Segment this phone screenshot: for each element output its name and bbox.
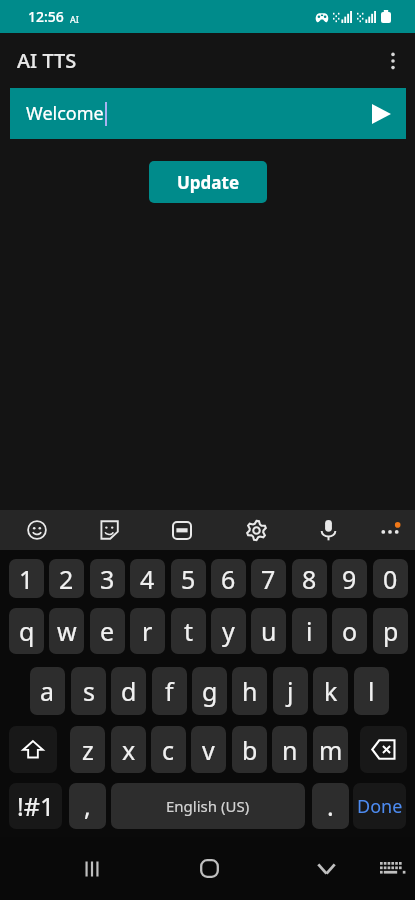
button[interactable]: 4 [130,559,165,598]
button[interactable]: 9 [332,559,367,598]
button[interactable]: Backspace [360,726,407,773]
button[interactable]: 5 [171,559,206,598]
staticText: h [242,674,258,708]
staticText: o [342,614,358,648]
staticText: c [162,733,175,767]
staticText: t [184,614,194,648]
staticText: 0 [383,562,398,596]
staticText: 7 [261,562,276,596]
staticText: u [261,614,277,648]
button[interactable]: Emoji [13,510,61,550]
staticText: 2 [59,562,74,596]
staticText: b [242,733,258,767]
staticText: x [122,733,136,767]
button[interactable]: x [111,726,146,773]
button[interactable]: a [30,667,65,715]
button[interactable]: k [313,667,348,715]
staticText: v [202,733,215,767]
staticText: , [84,789,91,823]
button[interactable]: 0 [373,559,408,598]
staticText: !#1 [17,789,55,823]
staticText: k [324,674,338,708]
button[interactable]: 3 [90,559,125,598]
staticText: 6 [221,562,236,596]
staticText: e [100,614,115,648]
staticText: s [83,674,95,708]
staticText: . [327,789,334,823]
staticText: 3 [100,562,115,596]
staticText: p [383,614,399,648]
staticText: z [82,733,94,767]
button[interactable]: Space [111,783,305,829]
button[interactable]: m [313,726,348,773]
staticText: 12:56 [28,7,64,26]
staticText: g [202,674,218,708]
button[interactable]: Settings [232,510,280,550]
staticText: f [165,674,174,708]
button[interactable]: Recent apps [64,837,120,900]
button[interactable]: v [191,726,226,773]
staticText: 5 [181,562,196,596]
button[interactable]: More options [371,33,415,88]
button[interactable]: s [71,667,106,715]
button[interactable]: g [192,667,227,715]
button[interactable]: Shift [9,726,57,773]
button[interactable]: Stickers [85,510,133,550]
staticText: 8 [302,562,317,596]
staticText: l [368,674,375,708]
button[interactable]: j [273,667,308,715]
button[interactable]: Voice input [304,510,352,550]
staticText: a [40,674,55,708]
button[interactable]: p [373,608,408,654]
button[interactable]: 8 [292,559,327,598]
button[interactable]: b [232,726,267,773]
staticText: j [287,674,294,708]
button[interactable]: c [151,726,186,773]
staticText: w [57,614,77,648]
button[interactable]: 6 [211,559,246,598]
button[interactable]: r [130,608,165,654]
button[interactable]: 2 [49,559,84,598]
button[interactable]: Home [181,837,237,900]
button[interactable]: n [272,726,307,773]
button[interactable]: Welcome [10,88,406,139]
button[interactable]: GIF [158,510,206,550]
button[interactable]: Update [149,161,267,203]
staticText: Welcome [26,101,104,126]
button[interactable]: o [332,608,367,654]
staticText: q [19,614,35,648]
button[interactable]: Change keyboard [363,837,415,900]
button[interactable]: z [70,726,105,773]
button[interactable]: e [90,608,125,654]
button[interactable]: , [69,783,106,829]
button[interactable]: i [292,608,327,654]
button[interactable]: f [152,667,187,715]
staticText: 9 [342,562,357,596]
staticText: m [319,733,343,767]
staticText: i [306,614,313,648]
button[interactable]: 1 [9,559,44,598]
button[interactable]: . [312,783,349,829]
staticText: 4 [140,562,155,596]
button[interactable]: t [171,608,206,654]
button[interactable]: Done [353,783,406,829]
button[interactable]: h [232,667,267,715]
staticText: y [222,614,235,648]
button[interactable]: More [366,510,414,550]
button[interactable]: u [251,608,286,654]
staticText: d [121,674,137,708]
staticText: 1 [19,562,34,596]
staticText: Done [357,794,403,819]
button[interactable]: 7 [251,559,286,598]
button[interactable]: Hide keyboard [298,837,354,900]
button[interactable]: y [211,608,246,654]
staticText: n [282,733,298,767]
staticText: AI TTS [17,47,77,74]
button[interactable]: l [354,667,389,715]
button[interactable]: !#1 [9,783,62,829]
button[interactable]: q [9,608,44,654]
staticText: r [142,614,153,648]
button[interactable]: d [111,667,146,715]
button[interactable]: w [49,608,84,654]
other: Speak [372,104,391,124]
